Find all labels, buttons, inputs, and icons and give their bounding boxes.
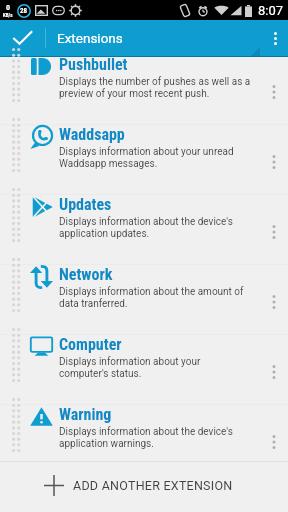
staticText: computer's status. [59, 368, 142, 380]
staticText: 0 [6, 3, 11, 12]
staticText: Displays information about your [59, 356, 201, 368]
staticText: preview of your most recent push. [59, 88, 210, 100]
staticText: Pushbullet [59, 55, 128, 74]
staticText: Network [59, 265, 113, 284]
button[interactable]: Extension options [260, 265, 288, 334]
staticText: Warning [59, 405, 112, 424]
staticText: Computer [59, 335, 122, 354]
staticText: application updates. [59, 228, 150, 240]
button[interactable]: Extension options [260, 55, 288, 124]
button[interactable]: Network [0, 265, 288, 334]
staticText: Displays information about the device's [59, 426, 233, 438]
button[interactable]: Computer [0, 335, 288, 404]
staticText: Extensions [57, 30, 123, 46]
staticText: ADD ANOTHER EXTENSION [73, 478, 233, 493]
staticText: data tranferred. [59, 298, 128, 310]
staticText: 8:07 [258, 3, 284, 18]
staticText: Displays information about your unread [59, 146, 234, 158]
button[interactable]: Pushbullet [0, 55, 288, 124]
staticText: Displays the number of pushes as well as… [59, 76, 251, 88]
button[interactable]: Done [0, 20, 45, 56]
button[interactable]: Warning [0, 405, 288, 459]
button[interactable]: Waddsapp [0, 125, 288, 194]
staticText: Waddsapp messages. [59, 158, 158, 170]
staticText: 28 [20, 7, 28, 15]
button[interactable]: Updates [0, 195, 288, 264]
staticText: Displays information about the device's [59, 216, 233, 228]
staticText: Waddsapp [59, 125, 125, 144]
staticText: Updates [59, 195, 112, 214]
button[interactable]: ADD ANOTHER EXTENSION [0, 462, 288, 512]
button[interactable]: Extension options [260, 195, 288, 264]
staticText: Displays information about the amount of [59, 286, 244, 298]
button[interactable]: More options [262, 20, 288, 56]
button[interactable]: Extension options [260, 125, 288, 194]
staticText: application warnings. [59, 438, 154, 450]
button[interactable]: Extension options [260, 405, 288, 459]
staticText: KB/s [3, 12, 13, 18]
button[interactable]: Extension options [260, 335, 288, 404]
